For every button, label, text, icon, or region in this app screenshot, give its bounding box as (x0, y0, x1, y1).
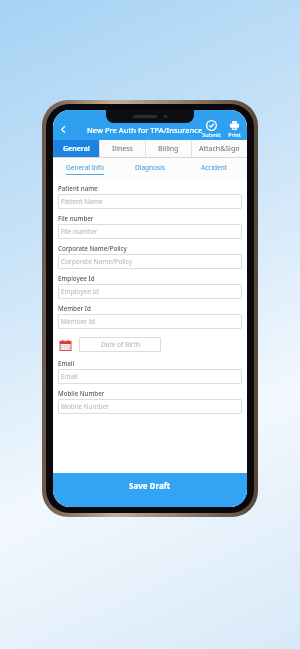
button[interactable]: Employee Id (58, 284, 242, 299)
button[interactable]: Mobile Number (58, 399, 242, 414)
staticText: New Pre Auth for TPA/Insurance (87, 125, 203, 135)
button[interactable]: Save Draft (53, 473, 247, 507)
staticText: Email (61, 372, 78, 381)
staticText: Member Id (58, 304, 91, 312)
button[interactable]: Email (58, 369, 242, 384)
button[interactable]: Illness (100, 140, 145, 157)
button[interactable]: General (53, 140, 99, 157)
staticText: Corporate Name/Policy (61, 257, 132, 266)
staticText: Patient name (58, 184, 98, 192)
staticText: Date of Birth (101, 340, 140, 349)
button[interactable]: Member Id (58, 314, 242, 329)
staticText: General (63, 144, 90, 154)
staticText: Diagnosis (135, 163, 165, 172)
staticText: General Info (66, 163, 105, 172)
staticText: Email (58, 359, 75, 367)
button[interactable]: Accident (182, 158, 247, 179)
button[interactable]: Diagnosis (117, 158, 182, 179)
button[interactable]: File number (58, 224, 242, 239)
staticText: File number (61, 227, 98, 236)
staticText: Billing (158, 144, 179, 154)
staticText: Member Id (61, 317, 95, 326)
button[interactable]: Corporate Name/Policy (58, 254, 242, 269)
staticText: Illness (112, 144, 133, 154)
staticText: Corporate Name/Policy (58, 244, 127, 252)
button[interactable]: Attach&Sign (192, 140, 247, 157)
staticText: Employee Id (58, 274, 95, 282)
button[interactable]: Pick date of birth (58, 337, 161, 352)
button[interactable]: Back (53, 119, 73, 139)
staticText: Save Draft (129, 480, 171, 491)
staticText: File number (58, 214, 94, 222)
button[interactable]: Patient Name (58, 194, 242, 209)
button[interactable]: Print (225, 120, 244, 138)
staticText: Attach&Sign (199, 144, 240, 154)
button[interactable]: Submit (202, 120, 221, 138)
button[interactable]: General Info (53, 158, 117, 179)
staticText: Mobile Number (58, 389, 105, 397)
staticText: Accident (201, 163, 228, 172)
staticText: Patient Name (61, 197, 103, 206)
staticText: Mobile Number (61, 402, 109, 411)
button[interactable]: Billing (146, 140, 191, 157)
staticText: Print (228, 131, 241, 138)
staticText: Employee Id (61, 287, 99, 296)
staticText: Submit (202, 131, 221, 138)
